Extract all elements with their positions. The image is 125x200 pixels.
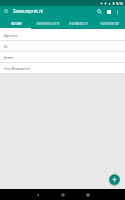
staticText: WINTERSPORT <box>100 22 120 26</box>
button[interactable]: NIEUWS <box>0 19 32 28</box>
button[interactable]: Recents <box>75 189 100 200</box>
button[interactable]: Anders <box>0 52 125 63</box>
staticText: Anders <box>4 56 14 60</box>
staticText: Onze Medewerkers <box>4 67 31 71</box>
button[interactable]: SNEEUWHOOGTE <box>32 19 63 28</box>
staticText: Algemeen <box>4 34 18 38</box>
button[interactable]: Search <box>95 7 104 16</box>
button[interactable]: Algemeen <box>0 30 125 41</box>
staticText: Sneeuwpret.nl <box>13 8 43 14</box>
button[interactable]: Home <box>50 189 75 200</box>
button[interactable]: WINTERSPORT <box>94 19 125 28</box>
staticText: NIEUWS <box>11 22 22 26</box>
button[interactable]: Onze Medewerkers <box>0 63 125 74</box>
button[interactable]: WEERBERICHT <box>63 19 94 28</box>
button[interactable]: More options <box>113 8 121 16</box>
staticText: 9:16 <box>116 1 124 6</box>
button[interactable]: Saved <box>104 7 113 16</box>
staticText: WEERBERICHT <box>69 22 88 26</box>
button[interactable]: Back <box>25 189 50 200</box>
staticText: Ski <box>4 45 8 49</box>
button[interactable]: Add <box>108 173 121 186</box>
button[interactable]: Ski <box>0 41 125 52</box>
button[interactable]: Menu <box>1 6 11 16</box>
staticText: SNEEUWHOOGTE <box>36 22 60 26</box>
